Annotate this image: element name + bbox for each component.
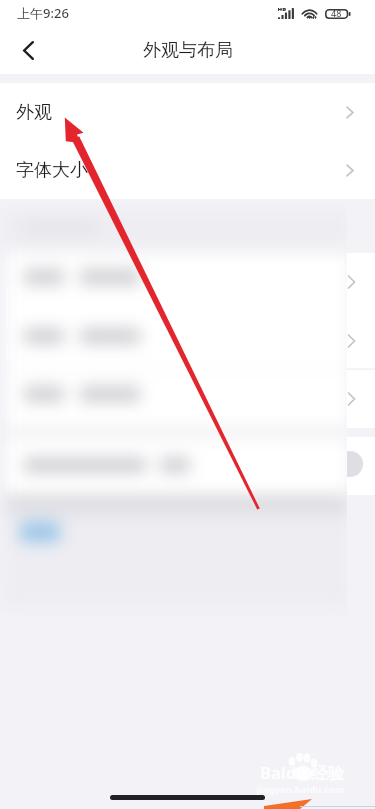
staticText: jingyan.baidu.com <box>257 783 345 796</box>
button[interactable]: Back <box>8 30 48 70</box>
staticText: 上午9:26 <box>17 4 69 22</box>
button[interactable]: 字体大小 <box>0 141 375 199</box>
staticText: 外观与布局 <box>143 39 233 62</box>
staticText: 48 <box>331 7 342 18</box>
staticText: 字体大小 <box>16 159 88 182</box>
staticText: Baidu 经验 <box>260 761 345 784</box>
button[interactable]: 外观 <box>0 83 375 141</box>
staticText: 外观 <box>16 101 52 124</box>
